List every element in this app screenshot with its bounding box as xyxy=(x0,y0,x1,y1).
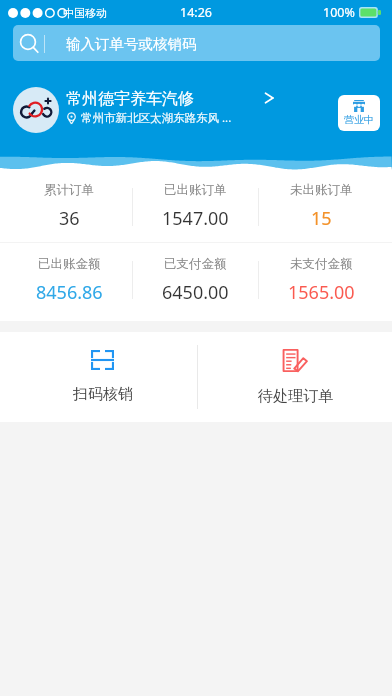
button[interactable]: 已支付金额 xyxy=(133,244,258,316)
staticText: 营业中 xyxy=(344,113,374,126)
button[interactable]: 常州德宇养车汽修 xyxy=(13,79,392,141)
staticText: 输入订单号或核销码 xyxy=(66,35,197,53)
staticText: 36 xyxy=(59,206,80,231)
button[interactable]: 累计订单 xyxy=(6,170,132,243)
staticText: 已出账金额 xyxy=(38,256,101,272)
staticText: 中国移动 xyxy=(63,6,107,20)
staticText: 14:26 xyxy=(180,4,212,21)
staticText: 未支付金额 xyxy=(290,256,353,272)
button[interactable]: 营业中 xyxy=(338,95,380,131)
staticText: 1565.00 xyxy=(288,280,355,305)
staticText: 待处理订单 xyxy=(258,387,333,406)
staticText: 100% xyxy=(323,4,355,21)
staticText: 累计订单 xyxy=(44,182,94,198)
staticText: 15 xyxy=(311,206,332,231)
button[interactable]: 未出账订单 xyxy=(259,170,384,243)
staticText: 常州德宇养车汽修 xyxy=(66,89,194,109)
button[interactable]: 输入订单号或核销码 xyxy=(13,25,380,61)
staticText: 已出账订单 xyxy=(164,182,227,198)
button[interactable]: Shop details xyxy=(262,90,276,106)
staticText: 6450.00 xyxy=(162,280,229,305)
staticText: 扫码核销 xyxy=(73,385,133,404)
staticText: 常州市新北区太湖东路东风 ... xyxy=(81,110,232,126)
staticText: 1547.00 xyxy=(162,206,229,231)
staticText: 8456.86 xyxy=(36,280,103,305)
button[interactable]: 已出账订单 xyxy=(133,170,258,243)
button[interactable]: 未支付金额 xyxy=(259,244,384,316)
staticText: 未出账订单 xyxy=(290,182,353,198)
button[interactable]: 已出账金额 xyxy=(6,244,132,316)
staticText: 已支付金额 xyxy=(164,256,227,272)
button[interactable]: 扫码核销 xyxy=(8,332,197,422)
button[interactable]: 待处理订单 xyxy=(198,332,392,422)
